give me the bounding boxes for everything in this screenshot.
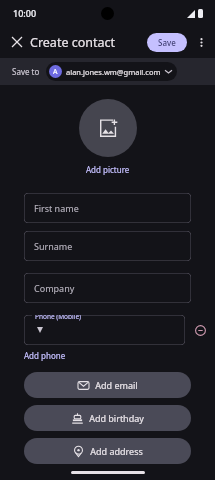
staticText: 10:00 xyxy=(13,7,37,19)
staticText: Phone (Mobile) xyxy=(35,315,82,321)
button[interactable]: A xyxy=(46,62,177,81)
button[interactable]: Add birthday xyxy=(24,405,191,431)
button[interactable]: Company xyxy=(24,273,191,303)
button[interactable]: Phone (Mobile) xyxy=(24,315,185,345)
button[interactable]: Surname xyxy=(24,231,191,261)
button[interactable]: Add picture xyxy=(79,99,137,157)
staticText: Save to xyxy=(12,66,40,77)
staticText: Save xyxy=(158,37,176,48)
staticText: First name xyxy=(34,202,79,214)
staticText: Surname xyxy=(34,240,73,252)
staticText: Add address xyxy=(90,445,143,457)
staticText: Company xyxy=(34,282,75,294)
staticText: A xyxy=(53,67,58,77)
button[interactable]: More options xyxy=(191,32,211,52)
staticText: Add picture xyxy=(86,164,130,175)
staticText: Add birthday xyxy=(89,412,144,424)
staticText: Add email xyxy=(95,379,138,391)
button[interactable]: Remove phone xyxy=(189,319,211,341)
button[interactable]: Add address xyxy=(24,438,191,464)
button[interactable]: Add email xyxy=(24,372,191,398)
button[interactable]: Close xyxy=(6,31,28,53)
button[interactable]: First name xyxy=(24,193,191,223)
staticText: alan.jones.wm@gmail.com xyxy=(66,67,161,77)
button[interactable]: Add phone xyxy=(24,347,66,364)
staticText: Add phone xyxy=(24,350,66,361)
staticText: Create contact xyxy=(30,34,116,51)
button[interactable]: Save xyxy=(147,33,187,52)
